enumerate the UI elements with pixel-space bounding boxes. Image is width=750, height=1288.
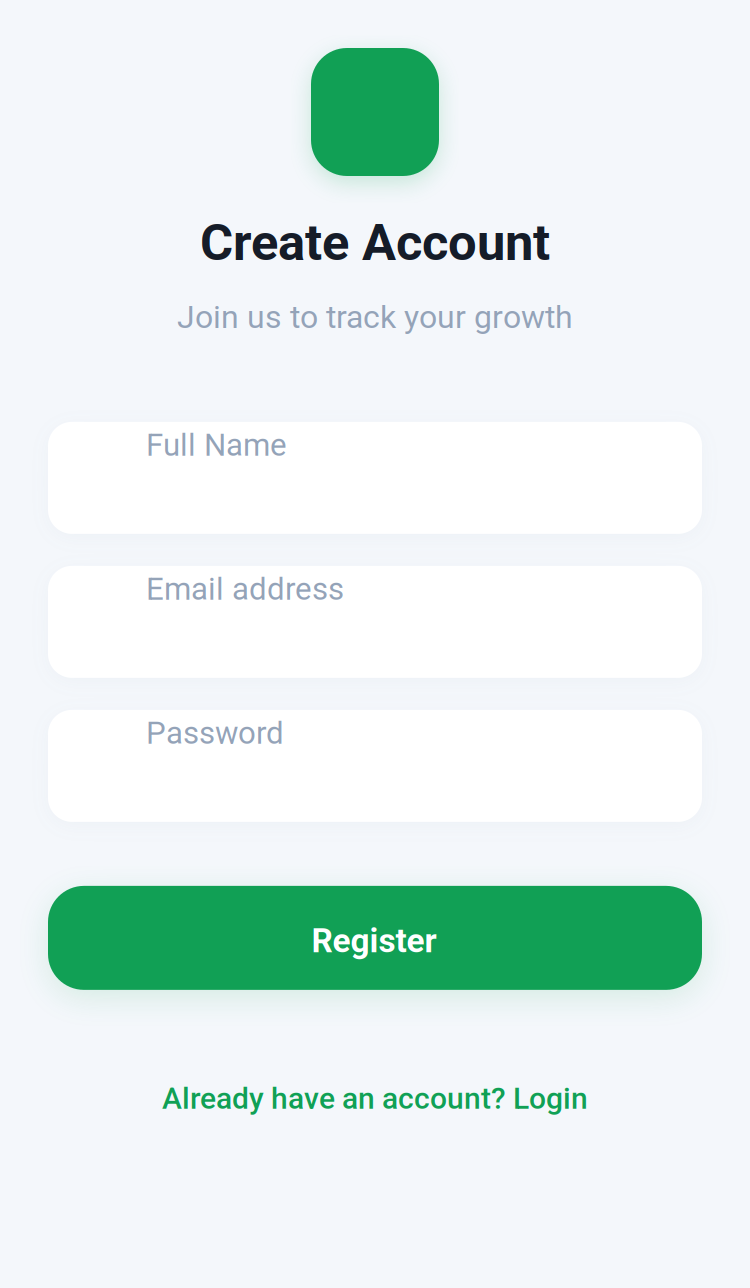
staticText: Register [311,921,436,960]
button[interactable]: Password [48,710,702,822]
staticText: Email address [146,571,344,607]
button[interactable]: Register [48,886,702,990]
staticText: Password [146,715,284,751]
staticText: Create Account [200,213,550,272]
button[interactable]: Full Name [48,422,702,534]
staticText: Join us to track your growth [177,298,573,336]
staticText: Full Name [146,427,287,463]
button[interactable]: Already have an account? Login [162,1081,588,1116]
button[interactable]: Email address [48,566,702,678]
staticText: Already have an account? Login [162,1081,588,1116]
